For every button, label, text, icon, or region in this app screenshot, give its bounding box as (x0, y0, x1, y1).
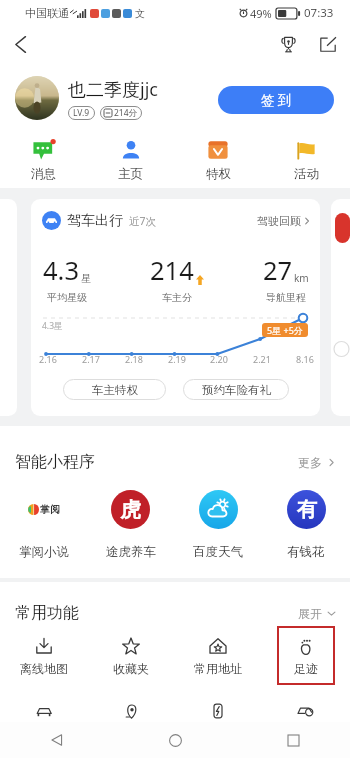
button[interactable]: 特权 (174, 130, 262, 188)
staticText: 有钱花 (287, 544, 325, 560)
staticText: 2.21 (253, 353, 271, 365)
staticText: 活动 (294, 166, 319, 182)
staticText: 足迹 (294, 661, 318, 676)
button[interactable]: 驾驶回顾 (257, 214, 311, 228)
staticText: 智能小程序 (15, 452, 95, 472)
button[interactable]: 离线地图 (15, 626, 73, 685)
staticText: 消息 (31, 166, 56, 182)
staticText: 特权 (206, 166, 231, 182)
button[interactable]: 活动 (262, 130, 350, 188)
staticText: 49% (250, 6, 272, 21)
staticText: 近7次 (129, 214, 157, 228)
button[interactable]: Car status (0, 700, 87, 722)
staticText: 5星 +5分 (267, 324, 303, 336)
staticText: 车主分 (162, 291, 192, 304)
button[interactable]: 百度天气 (174, 490, 262, 560)
staticText: 预约车险有礼 (202, 383, 271, 397)
button[interactable]: 收藏夹 (102, 626, 160, 685)
staticText: 2.16 (39, 353, 57, 365)
staticText: 中国联通 (25, 6, 69, 20)
button[interactable]: Parking (262, 700, 350, 722)
staticText: 导航里程 (266, 291, 306, 304)
staticText: 常用地址 (194, 661, 242, 676)
button[interactable]: Back (4, 28, 36, 60)
button[interactable]: Location (87, 700, 174, 722)
staticText: 4.3 (43, 253, 80, 288)
staticText: 常用功能 (15, 603, 79, 623)
staticText: 平均星级 (47, 291, 87, 304)
button[interactable]: 预约车险有礼 (183, 379, 289, 400)
button[interactable]: 主页 (87, 130, 174, 188)
staticText: LV.9 (73, 107, 90, 119)
button[interactable]: Rewards (274, 30, 302, 58)
staticText: 07:33 (304, 5, 334, 21)
staticText: 2.18 (125, 353, 143, 365)
staticText: 百度天气 (193, 544, 243, 560)
button[interactable]: Charging (174, 700, 262, 722)
button[interactable]: 掌阅 (0, 490, 87, 560)
staticText: 途虎养车 (106, 544, 156, 560)
button[interactable]: 有 (262, 490, 350, 560)
button[interactable]: 展开 (298, 606, 336, 621)
staticText: 离线地图 (20, 661, 68, 676)
staticText: 2.20 (210, 353, 228, 365)
staticText: 214分 (114, 107, 138, 119)
button[interactable]: 足迹 (277, 626, 335, 685)
staticText: 驾驶回顾 (257, 214, 301, 228)
staticText: 2.19 (168, 353, 186, 365)
staticText: 主页 (118, 166, 143, 182)
button[interactable]: Edit (314, 30, 342, 58)
staticText: 车主特权 (92, 383, 138, 397)
staticText: 更多 (298, 455, 322, 470)
staticText: 掌阅 (40, 503, 60, 516)
button[interactable]: 签 到 (218, 86, 334, 114)
button[interactable]: 更多 (298, 455, 336, 470)
staticText: 2.17 (82, 353, 100, 365)
staticText: 8.16 (296, 353, 314, 365)
button[interactable]: Home (158, 723, 192, 757)
button[interactable]: Avatar (15, 76, 59, 120)
staticText: 收藏夹 (113, 661, 149, 676)
button[interactable]: 消息 (0, 130, 87, 188)
staticText: 星 (81, 272, 91, 285)
staticText: 签 到 (261, 91, 292, 109)
staticText: 展开 (298, 606, 322, 621)
staticText: km (294, 271, 309, 285)
staticText: 驾车出行 (67, 212, 123, 230)
staticText: 4.3星 (42, 320, 63, 332)
staticText: 掌阅小说 (19, 544, 69, 560)
staticText: 也二季度jjc (68, 77, 158, 102)
staticText: 27 (263, 253, 293, 288)
button[interactable]: 虎 (87, 490, 174, 560)
staticText: 有 (297, 497, 317, 522)
button[interactable]: Recents (276, 723, 310, 757)
button[interactable]: 常用地址 (189, 626, 247, 685)
staticText: 214 (150, 253, 194, 288)
staticText: 虎 (120, 497, 141, 523)
button[interactable]: 车主特权 (63, 379, 166, 400)
button[interactable]: Back (40, 723, 74, 757)
staticText: 文 (135, 7, 145, 20)
